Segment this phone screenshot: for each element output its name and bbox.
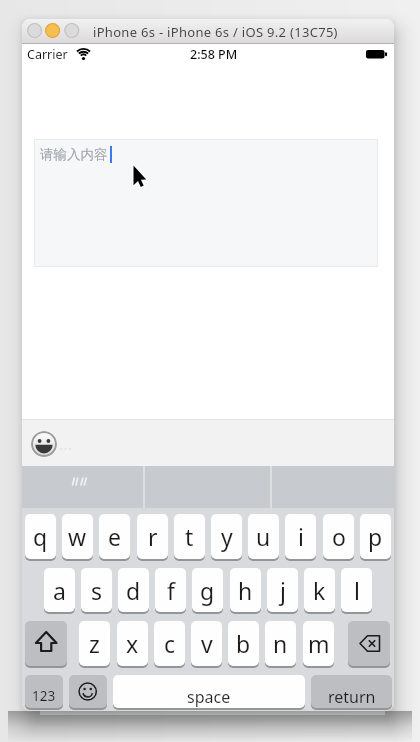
staticText: s xyxy=(91,575,103,606)
button[interactable] xyxy=(25,621,67,666)
staticText: k xyxy=(313,575,326,606)
button[interactable]: x xyxy=(117,621,148,666)
staticText: z xyxy=(89,628,100,659)
staticText: m xyxy=(308,628,330,659)
staticText: u xyxy=(256,521,271,552)
staticText: v xyxy=(201,628,213,659)
button[interactable]: y xyxy=(211,514,242,559)
button[interactable] xyxy=(69,675,107,708)
staticText: q xyxy=(33,521,48,552)
staticText: r xyxy=(148,521,158,552)
staticText: 请输入内容 xyxy=(40,146,108,163)
staticText: b xyxy=(236,628,251,659)
button[interactable]: w xyxy=(62,514,93,559)
staticText: i xyxy=(298,521,304,552)
button[interactable]: l xyxy=(341,568,372,612)
staticText: Carrier xyxy=(27,46,68,63)
button[interactable]: i xyxy=(285,514,316,559)
button[interactable]: o xyxy=(323,514,354,559)
staticText: 123 xyxy=(32,687,56,705)
staticText: y xyxy=(221,521,233,552)
button[interactable]: space xyxy=(113,675,305,708)
staticText: return xyxy=(328,686,376,708)
button[interactable]: c xyxy=(154,621,185,666)
staticText: a xyxy=(53,575,66,606)
button[interactable]: f xyxy=(155,568,186,612)
staticText: iPhone 6s - iPhone 6s / iOS 9.2 (13C75) xyxy=(93,23,338,40)
button[interactable]: n xyxy=(265,621,296,666)
button[interactable]: j xyxy=(267,568,298,612)
button[interactable]: k xyxy=(304,568,335,612)
button[interactable]: s xyxy=(81,568,112,612)
button[interactable]: v xyxy=(191,621,222,666)
button[interactable] xyxy=(31,431,57,457)
staticText: j xyxy=(280,575,286,606)
button[interactable]: 123 xyxy=(25,675,63,708)
staticText: t xyxy=(185,521,194,552)
button[interactable]: a xyxy=(44,568,75,612)
staticText: e xyxy=(108,521,121,552)
button[interactable]: t xyxy=(174,514,205,559)
staticText: g xyxy=(200,575,215,606)
staticText: space xyxy=(187,686,231,708)
button[interactable]: h xyxy=(230,568,261,612)
staticText: 2:58 PM xyxy=(190,46,238,62)
button[interactable]: r xyxy=(137,514,168,559)
button[interactable]: q xyxy=(25,514,56,559)
staticText: w xyxy=(68,521,87,552)
button[interactable]: b xyxy=(228,621,259,666)
staticText: p xyxy=(368,521,383,552)
staticText: d xyxy=(126,575,141,606)
button[interactable]: g xyxy=(192,568,223,612)
staticText: f xyxy=(167,575,175,606)
button[interactable]: m xyxy=(303,621,334,666)
staticText: o xyxy=(332,521,346,552)
button[interactable]: return xyxy=(311,675,392,708)
button[interactable]: e xyxy=(99,514,130,559)
button[interactable] xyxy=(348,621,390,666)
staticText: h xyxy=(238,575,253,606)
staticText: c xyxy=(164,628,176,659)
button[interactable]: d xyxy=(118,568,149,612)
button[interactable]: p xyxy=(360,514,391,559)
staticText: x xyxy=(126,628,139,659)
staticText: n xyxy=(273,628,288,659)
staticText: l xyxy=(354,575,360,606)
button[interactable]: u xyxy=(248,514,279,559)
button[interactable]: z xyxy=(79,621,110,666)
